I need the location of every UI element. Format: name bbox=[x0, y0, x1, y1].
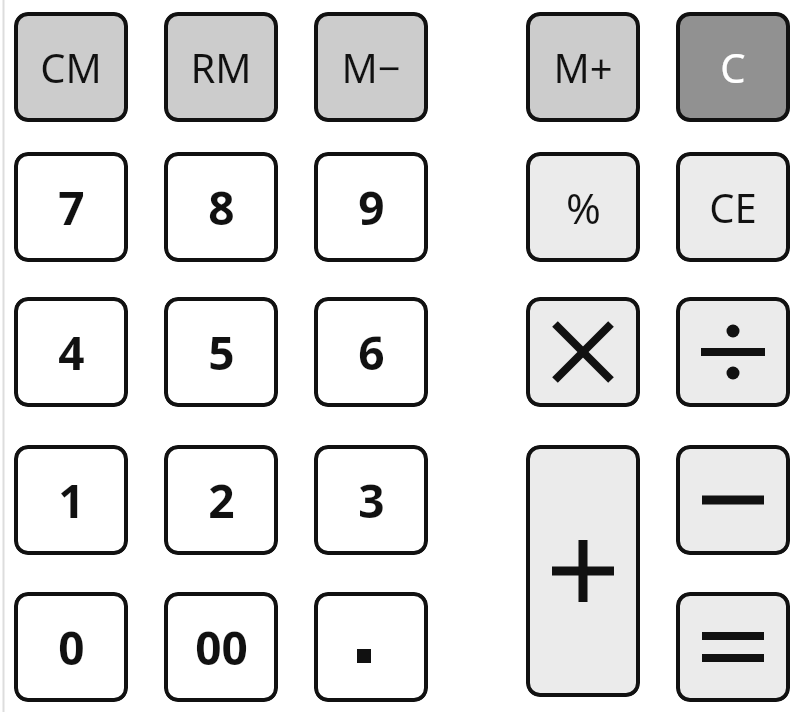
staticText: 8 bbox=[208, 176, 235, 239]
button[interactable]: 6 bbox=[314, 297, 428, 407]
staticText: 7 bbox=[58, 176, 85, 239]
staticText: RM bbox=[190, 40, 252, 94]
button[interactable]: 0 bbox=[14, 592, 128, 702]
button[interactable]: 4 bbox=[14, 297, 128, 407]
button[interactable]: Subtract bbox=[676, 445, 790, 555]
button[interactable]: Divide bbox=[676, 297, 790, 407]
staticText: 3 bbox=[358, 469, 385, 532]
button[interactable]: Multiply bbox=[526, 297, 640, 407]
button[interactable]: 00 bbox=[164, 592, 278, 702]
staticText: CM bbox=[40, 40, 102, 94]
staticText: 00 bbox=[195, 616, 248, 679]
button[interactable]: 8 bbox=[164, 152, 278, 262]
button[interactable]: 1 bbox=[14, 445, 128, 555]
staticText: 9 bbox=[358, 176, 385, 239]
button[interactable]: 7 bbox=[14, 152, 128, 262]
button[interactable]: CM bbox=[14, 12, 128, 122]
button[interactable]: Add bbox=[526, 445, 640, 697]
button[interactable]: CE bbox=[676, 152, 790, 262]
staticText: 4 bbox=[58, 321, 85, 384]
button[interactable]: M+ bbox=[526, 12, 640, 122]
staticText: C bbox=[720, 40, 746, 94]
staticText: 1 bbox=[58, 469, 85, 532]
staticText: 0 bbox=[58, 616, 85, 679]
staticText: CE bbox=[709, 180, 757, 234]
button[interactable]: RM bbox=[164, 12, 278, 122]
button[interactable]: 9 bbox=[314, 152, 428, 262]
button[interactable]: % bbox=[526, 152, 640, 262]
staticText: 2 bbox=[208, 469, 235, 532]
button[interactable]: Equals bbox=[676, 592, 790, 702]
staticText: M+ bbox=[553, 40, 613, 94]
button[interactable]: C bbox=[676, 12, 790, 122]
button[interactable]: M− bbox=[314, 12, 428, 122]
button[interactable]: 3 bbox=[314, 445, 428, 555]
staticText: % bbox=[566, 179, 601, 236]
button[interactable]: 2 bbox=[164, 445, 278, 555]
button[interactable]: Decimal point bbox=[314, 592, 428, 702]
staticText: 5 bbox=[208, 321, 235, 384]
staticText: M− bbox=[341, 40, 401, 94]
staticText: 6 bbox=[358, 321, 385, 384]
button[interactable]: 5 bbox=[164, 297, 278, 407]
